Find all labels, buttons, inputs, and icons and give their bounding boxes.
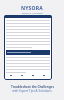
staticText: with Expert Tips & Solutions [12, 89, 52, 93]
staticText: Troubleshoot the Challenges [11, 85, 54, 89]
staticText: REGIONAL ANESTHESIA [22, 12, 43, 15]
staticText: NYSORA [21, 5, 43, 12]
